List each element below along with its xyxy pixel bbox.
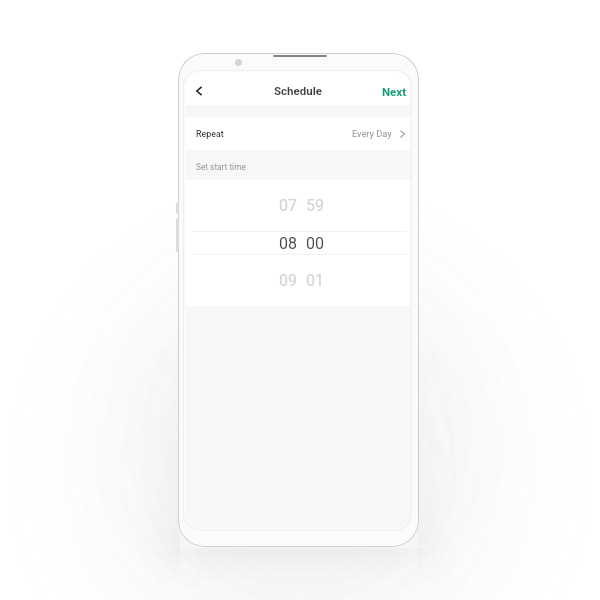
button[interactable]: Back — [186, 76, 210, 102]
staticText: 07 — [279, 196, 297, 215]
button[interactable]: Next — [376, 81, 410, 102]
staticText: Every Day — [352, 128, 392, 139]
staticText: Schedule — [274, 84, 322, 97]
staticText: 09 — [279, 271, 297, 290]
staticText: 08 — [279, 234, 297, 253]
staticText: 59 — [306, 196, 324, 215]
staticText: 01 — [306, 271, 324, 290]
staticText: 00 — [306, 234, 324, 253]
button[interactable]: Repeat — [186, 117, 410, 150]
staticText: Set start time — [196, 162, 246, 172]
staticText: Next — [382, 85, 407, 98]
staticText: Repeat — [196, 129, 224, 139]
